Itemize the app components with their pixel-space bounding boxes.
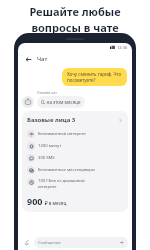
staticText: Безлимитный интернет — [38, 131, 86, 137]
button[interactable]: Хочу сменить тариф. Что — [62, 68, 127, 86]
button[interactable]: Безлимитный интернет — [27, 130, 123, 138]
button[interactable]: 300 SMS — [27, 154, 123, 162]
button[interactable]: 1200 минут — [27, 142, 123, 150]
staticText: 300 SMS — [38, 155, 55, 161]
staticText: Безлимитные мессенджеры — [38, 167, 96, 173]
staticText: Чат — [37, 55, 48, 63]
staticText: посоветуете? — [67, 77, 96, 83]
button[interactable]: Базовые лица 3 — [22, 111, 128, 212]
staticText: Онлайн-чат — [37, 90, 57, 95]
staticText: Сообщение — [38, 240, 61, 245]
button[interactable]: 100 ГБна от домашний — [27, 178, 123, 190]
staticText: Хочу сменить тариф. Что — [67, 71, 122, 77]
button[interactable]: Безлимитные мессенджеры — [27, 166, 123, 174]
staticText: Базовые лица 3 — [27, 116, 76, 124]
button[interactable]: Назад — [23, 54, 34, 65]
staticText: интернет — [38, 184, 57, 190]
staticText: Решайте любые — [29, 4, 121, 19]
button[interactable]: Сообщение — [34, 237, 128, 248]
staticText: 1200 минут — [38, 143, 62, 149]
staticText: О, на этом месяце — [41, 99, 81, 105]
button[interactable]: Прикрепить файл — [22, 237, 32, 247]
staticText: ₽ в месяц — [45, 200, 67, 206]
button[interactable]: О, на этом месяце — [37, 96, 85, 108]
staticText: 12:30 — [117, 45, 128, 50]
staticText: вопросы в чате — [31, 20, 119, 35]
staticText: 100 ГБна от домашний — [38, 178, 85, 184]
staticText: 900 — [27, 195, 43, 207]
